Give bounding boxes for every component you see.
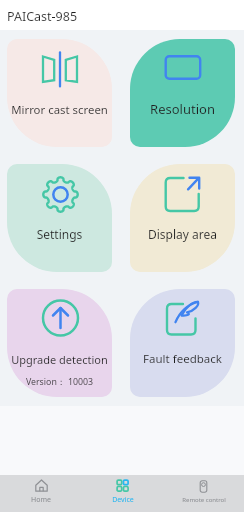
- staticText: Display area: [130, 226, 235, 242]
- staticText: Home: [31, 495, 51, 505]
- button[interactable]: Device: [82, 473, 163, 510]
- staticText: Device: [112, 495, 134, 505]
- staticText: PAICast-985: [7, 8, 78, 25]
- staticText: Version： 10003: [7, 376, 112, 388]
- staticText: Settings: [7, 226, 112, 242]
- staticText: Upgrade detection: [7, 352, 112, 367]
- staticText: Resolution: [130, 100, 235, 118]
- staticText: Fault feedback: [130, 351, 235, 367]
- staticText: Mirror cast screen: [7, 102, 112, 118]
- button[interactable]: Upgrade detection: [7, 289, 112, 397]
- button[interactable]: Settings: [7, 164, 112, 272]
- button[interactable]: Home: [0, 473, 82, 510]
- button[interactable]: Fault feedback: [130, 289, 235, 397]
- button[interactable]: Display area: [130, 164, 235, 272]
- button[interactable]: Mirror cast screen: [7, 39, 112, 147]
- staticText: Remote control: [182, 496, 226, 504]
- button[interactable]: Resolution: [130, 39, 235, 147]
- button[interactable]: Remote control: [163, 473, 244, 510]
